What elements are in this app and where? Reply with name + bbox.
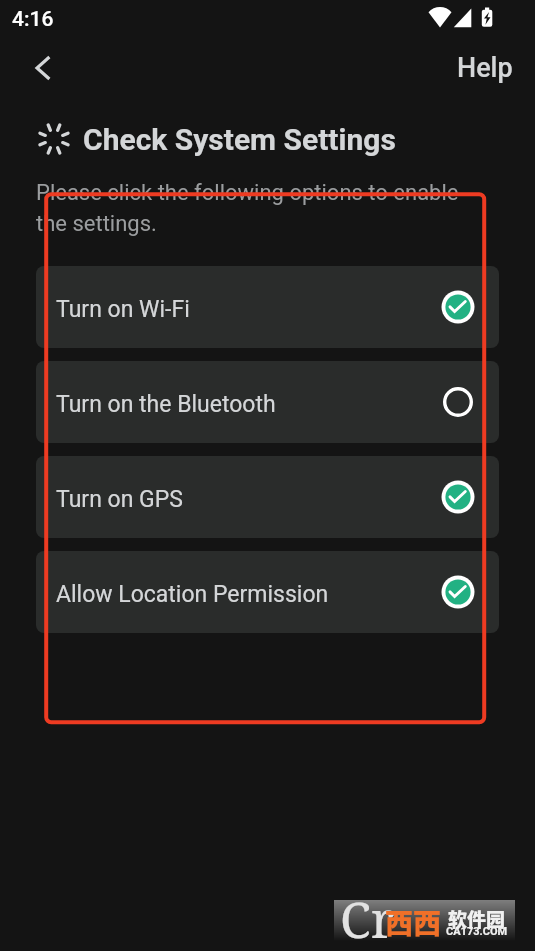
staticText: CA173.COM (446, 925, 508, 938)
staticText: Help (457, 52, 513, 84)
staticText: Check System Settings (83, 122, 396, 157)
button[interactable]: Turn on GPS (36, 456, 499, 538)
staticText: 软件园 (448, 905, 506, 933)
staticText: 4:16 (12, 7, 54, 32)
button[interactable]: Turn on the Bluetooth (36, 361, 499, 443)
button[interactable]: Turn on Wi-Fi (36, 266, 499, 348)
button[interactable]: Help (435, 44, 535, 92)
button[interactable]: Back (19, 44, 67, 92)
staticText: Please click the following options to en… (36, 180, 491, 236)
staticText: Allow Location Permission (56, 581, 440, 608)
staticText: Turn on Wi-Fi (56, 296, 440, 323)
staticText: Turn on the Bluetooth (56, 391, 440, 418)
button[interactable]: Allow Location Permission (36, 551, 499, 633)
staticText: Cr (340, 885, 395, 951)
staticText: 西西 (385, 902, 442, 943)
staticText: Turn on GPS (56, 486, 440, 513)
